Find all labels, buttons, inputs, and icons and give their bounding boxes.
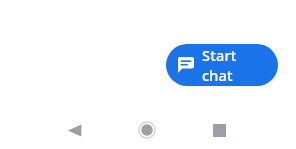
button[interactable]: Home bbox=[129, 112, 165, 148]
staticText: Start chat bbox=[202, 45, 262, 85]
button[interactable]: Recent apps bbox=[201, 112, 237, 148]
button[interactable]: Start chat bbox=[166, 44, 278, 86]
button[interactable]: Back bbox=[56, 112, 92, 148]
